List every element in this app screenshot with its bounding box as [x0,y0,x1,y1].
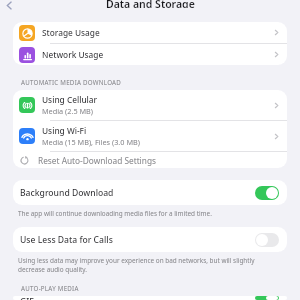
staticText: Storage Usage [42,27,100,38]
button[interactable]: GIFs toggle [255,296,279,300]
staticText: Use Less Data for Calls [20,234,255,246]
button[interactable]: Background Download toggle [255,186,279,200]
staticText: Using less data may improve your experie… [18,256,280,274]
button[interactable]: Use Less Data for Calls [13,227,287,252]
staticText: The app will continue downloading media … [18,209,212,218]
button[interactable]: Using Cellular [13,90,287,120]
staticText: Media (2.5 MB) [42,106,94,116]
button[interactable]: Reset Auto-Download Settings [13,152,287,168]
staticText: Data and Storage [106,0,195,8]
staticText: Media (15 MB), Files (3.0 MB) [42,137,140,147]
staticText: AUTO-PLAY MEDIA [21,284,79,292]
button[interactable]: Using Wi-Fi [13,121,287,151]
staticText: Reset Auto-Download Settings [38,155,156,166]
button[interactable]: Background Download [13,180,287,205]
button[interactable]: Back [2,0,16,11]
staticText: Network Usage [42,49,104,60]
staticText: GIFs [20,296,255,300]
staticText: AUTOMATIC MEDIA DOWNLOAD [21,78,122,86]
button[interactable]: Storage Usage [13,22,287,43]
staticText: Using Cellular [42,94,98,105]
staticText: Background Download [20,187,255,199]
button[interactable]: GIFs [13,296,287,300]
staticText: Using Wi-Fi [42,125,87,136]
button[interactable]: Use Less Data for Calls toggle [255,233,279,247]
button[interactable]: Network Usage [13,44,287,65]
